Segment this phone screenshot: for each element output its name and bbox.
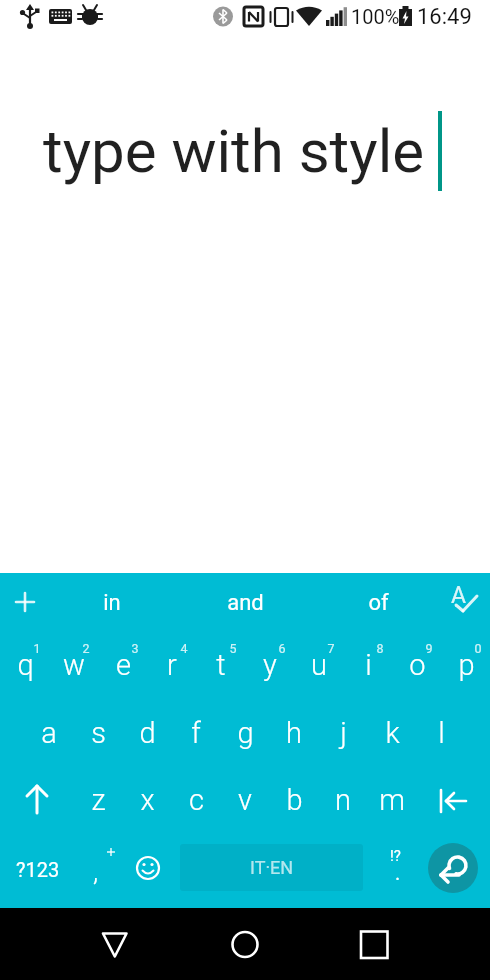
button[interactable]: 7 bbox=[307, 626, 355, 670]
staticText: 7 bbox=[327, 641, 335, 656]
staticText: f bbox=[191, 716, 201, 750]
staticText: l bbox=[438, 716, 445, 750]
button[interactable] bbox=[327, 908, 490, 980]
staticText: q bbox=[17, 648, 34, 682]
button[interactable]: k bbox=[368, 711, 416, 755]
button[interactable]: 6 bbox=[258, 626, 306, 670]
staticText: 100% bbox=[351, 5, 400, 28]
button[interactable]: n bbox=[319, 778, 367, 822]
staticText: b bbox=[286, 783, 303, 817]
button[interactable]: b bbox=[270, 778, 318, 822]
staticText: g bbox=[237, 716, 254, 750]
button[interactable] bbox=[76, 846, 124, 890]
button[interactable]: in bbox=[72, 589, 152, 617]
staticText: a bbox=[41, 716, 57, 750]
button[interactable]: of bbox=[338, 589, 418, 617]
staticText: of bbox=[368, 590, 389, 616]
button[interactable]: l bbox=[417, 711, 465, 755]
staticText: k bbox=[385, 716, 400, 750]
staticText: v bbox=[238, 783, 252, 817]
button[interactable]: s bbox=[74, 711, 122, 755]
staticText: 0 bbox=[474, 641, 482, 656]
staticText: t bbox=[216, 648, 226, 682]
button[interactable]: o bbox=[393, 643, 441, 687]
button[interactable]: f bbox=[172, 711, 220, 755]
staticText: w bbox=[63, 648, 85, 682]
staticText: p bbox=[458, 648, 475, 682]
button[interactable]: r bbox=[148, 643, 196, 687]
button[interactable]: 9 bbox=[405, 626, 453, 670]
staticText: m bbox=[379, 783, 405, 817]
staticText: s bbox=[91, 716, 106, 750]
staticText: IT·EN bbox=[250, 857, 294, 878]
button[interactable]: 4 bbox=[160, 626, 208, 670]
button[interactable]: w bbox=[50, 643, 98, 687]
staticText: u bbox=[311, 648, 327, 682]
button[interactable]: 5 bbox=[209, 626, 257, 670]
button[interactable]: v bbox=[221, 778, 269, 822]
staticText: y bbox=[263, 648, 277, 682]
staticText: 4 bbox=[180, 641, 188, 656]
button[interactable]: g bbox=[221, 711, 269, 755]
staticText: A bbox=[451, 582, 467, 609]
button[interactable]: a bbox=[25, 711, 73, 755]
button[interactable]: t bbox=[197, 643, 245, 687]
button[interactable]: x bbox=[123, 778, 171, 822]
button[interactable]: j bbox=[319, 711, 367, 755]
button[interactable]: q bbox=[1, 643, 49, 687]
staticText: 2 bbox=[82, 641, 90, 656]
button[interactable]: and bbox=[205, 589, 285, 617]
button[interactable]: y bbox=[246, 643, 294, 687]
staticText: 6 bbox=[278, 641, 286, 656]
button[interactable]: IT·EN bbox=[180, 844, 363, 891]
button[interactable]: 8 bbox=[356, 626, 404, 670]
staticText: d bbox=[139, 716, 156, 750]
staticText: 9 bbox=[425, 641, 433, 656]
staticText: !? bbox=[390, 847, 401, 865]
staticText: and bbox=[227, 590, 264, 616]
staticText: 8 bbox=[376, 641, 384, 656]
staticText: 5 bbox=[229, 641, 237, 656]
staticText: x bbox=[140, 783, 155, 817]
button[interactable]: p bbox=[442, 643, 490, 687]
button[interactable] bbox=[0, 908, 164, 980]
staticText: , bbox=[93, 856, 99, 888]
staticText: in bbox=[103, 590, 121, 616]
staticText: j bbox=[340, 716, 347, 750]
staticText: type with style bbox=[43, 116, 425, 186]
button[interactable]: e bbox=[99, 643, 147, 687]
button[interactable]: 3 bbox=[111, 626, 159, 670]
button[interactable]: z bbox=[74, 778, 122, 822]
button[interactable] bbox=[164, 908, 327, 980]
button[interactable]: 0 bbox=[454, 626, 490, 670]
button[interactable]: 1 bbox=[13, 626, 61, 670]
staticText: i bbox=[365, 648, 372, 682]
button[interactable]: u bbox=[295, 643, 343, 687]
button[interactable]: h bbox=[270, 711, 318, 755]
button[interactable]: d bbox=[123, 711, 171, 755]
staticText: 1 bbox=[33, 641, 41, 656]
staticText: n bbox=[335, 783, 351, 817]
staticText: 3 bbox=[131, 641, 139, 656]
staticText: 16:49 bbox=[417, 4, 472, 30]
button[interactable]: m bbox=[368, 778, 416, 822]
button[interactable]: i bbox=[344, 643, 392, 687]
staticText: . bbox=[395, 861, 401, 884]
staticText: z bbox=[91, 783, 106, 817]
staticText: o bbox=[409, 648, 426, 682]
staticText: r bbox=[167, 648, 177, 682]
staticText: c bbox=[189, 783, 204, 817]
staticText: ?123 bbox=[16, 858, 60, 881]
staticText: h bbox=[286, 716, 302, 750]
button[interactable]: 2 bbox=[62, 626, 110, 670]
staticText: e bbox=[116, 648, 131, 682]
button[interactable]: c bbox=[172, 778, 220, 822]
